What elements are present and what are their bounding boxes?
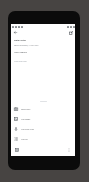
staticText: Edited Wednesday, 13 April 2022 [14,44,39,46]
button[interactable]: Take Photo [11,104,75,114]
button[interactable]: Back [11,28,20,37]
staticText: Notes Title [14,39,26,42]
staticText: Add Image [21,118,31,120]
staticText: Take Photo [21,108,31,110]
button[interactable]: Add List [11,134,75,144]
staticText: Add Voice Note [21,128,34,130]
staticText: Add List [21,138,28,140]
button[interactable]: Edit [66,28,75,37]
button[interactable]: Add [13,146,21,154]
staticText: Notes Subtitle [14,51,27,54]
button[interactable]: Add Voice Note [11,124,75,134]
button[interactable]: Add Image [11,114,75,124]
staticText: Type note here [14,60,27,62]
button[interactable]: More options [65,146,73,154]
